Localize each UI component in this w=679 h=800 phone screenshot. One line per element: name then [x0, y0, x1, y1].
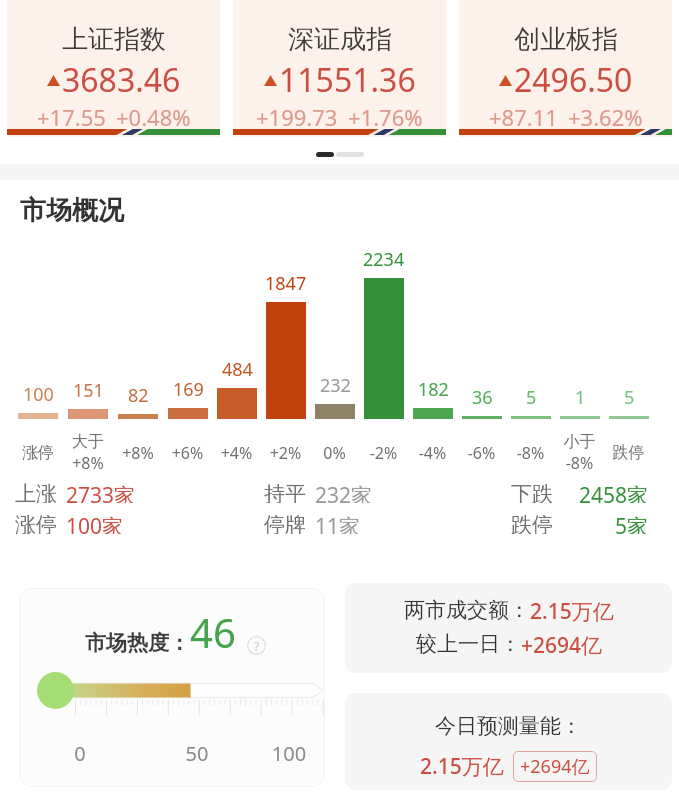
staticText: 大于	[63, 432, 113, 452]
staticText: 2.15万亿	[420, 752, 504, 781]
staticText: +17.55	[37, 102, 106, 132]
staticText: +2694亿	[520, 754, 590, 779]
staticText: 上证指数	[62, 23, 166, 56]
staticText: 跌停	[511, 512, 553, 534]
staticText: -8%	[555, 452, 604, 474]
staticText: +8%	[113, 442, 163, 464]
staticText: +4%	[212, 442, 261, 464]
button[interactable]: 创业板指	[459, 0, 672, 137]
staticText: 上涨	[15, 481, 57, 503]
staticText: 46	[190, 605, 236, 659]
staticText: 停牌	[264, 512, 306, 534]
staticText: 182	[418, 377, 449, 402]
staticText: -8%	[506, 442, 555, 464]
staticText: 5家	[615, 512, 649, 534]
staticText: +199.73	[256, 102, 338, 132]
staticText: 小于	[555, 432, 604, 452]
button[interactable]: 今日预测量能：	[345, 693, 672, 790]
button[interactable]: 深证成指	[233, 0, 446, 137]
staticText: 169	[173, 377, 204, 402]
staticText: 232家	[315, 481, 373, 503]
staticText: +2%	[261, 442, 310, 464]
staticText: 深证成指	[288, 23, 392, 56]
staticText: 1	[575, 385, 586, 410]
staticText: 0%	[310, 442, 359, 464]
staticText: 0	[19, 740, 141, 767]
staticText: 市场热度：	[85, 630, 190, 656]
staticText: -6%	[457, 442, 506, 464]
staticText: 11家	[315, 512, 361, 534]
staticText: 跌停	[604, 443, 653, 463]
staticText: 持平	[264, 481, 306, 503]
staticText: +1.76%	[348, 102, 423, 132]
button[interactable]: 市场热度：	[19, 588, 325, 787]
staticText: 下跌	[511, 481, 553, 503]
staticText: 50	[141, 740, 253, 767]
staticText: 11551.36	[279, 58, 416, 102]
staticText: 2234	[363, 247, 405, 272]
staticText: 较上一日：	[416, 631, 521, 657]
staticText: 创业板指	[514, 23, 618, 56]
staticText: +0.48%	[116, 102, 191, 132]
staticText: 涨停	[13, 443, 63, 463]
staticText: 100	[23, 382, 54, 407]
staticText: 1847	[265, 271, 307, 296]
staticText: 100	[253, 740, 325, 767]
staticText: 151	[73, 378, 104, 403]
button[interactable]: 两市成交额：	[345, 583, 672, 673]
staticText: 232	[320, 373, 351, 398]
staticText: 两市成交额：	[404, 597, 530, 623]
staticText: 82	[128, 383, 149, 408]
staticText: ?	[254, 638, 260, 654]
staticText: 36	[472, 385, 493, 410]
staticText: 5	[624, 385, 635, 410]
staticText: +87.11	[489, 102, 558, 132]
staticText: +8%	[63, 452, 113, 474]
staticText: -2%	[359, 442, 408, 464]
staticText: 2458家	[579, 481, 649, 503]
staticText: 今日预测量能：	[435, 713, 582, 739]
staticText: 市场概况	[20, 194, 124, 227]
staticText: -4%	[408, 442, 457, 464]
staticText: 5	[526, 385, 537, 410]
staticText: +3.62%	[568, 102, 643, 132]
staticText: 2733家	[66, 481, 136, 503]
staticText: 100家	[66, 512, 124, 534]
staticText: 涨停	[15, 512, 57, 534]
staticText: 484	[222, 357, 253, 382]
staticText: 2496.50	[514, 58, 633, 102]
button[interactable]: 帮助	[247, 636, 266, 655]
staticText: +6%	[163, 442, 212, 464]
staticText: 2.15万亿	[530, 597, 614, 626]
staticText: 3683.46	[62, 58, 181, 102]
button[interactable]: 上证指数	[7, 0, 220, 137]
staticText: +2694亿	[521, 631, 603, 660]
